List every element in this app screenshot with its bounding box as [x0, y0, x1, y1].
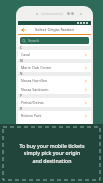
- staticText: Nossa Sanktarin: [21, 87, 84, 92]
- staticText: Roboni Park: [21, 113, 84, 118]
- staticText: P: [20, 94, 22, 98]
- staticText: Casal: [21, 52, 84, 57]
- button[interactable]: Back: [20, 27, 26, 33]
- button[interactable]: Search: [22, 37, 87, 44]
- button[interactable]: Marie Club Center: [18, 63, 91, 72]
- button[interactable]: Back: [18, 25, 91, 34]
- button[interactable]: Nossa Sanktarin: [18, 85, 91, 94]
- staticText: Nossa Harrillon: [21, 78, 84, 83]
- staticText: To buy your mobile tickets simply pick y…: [19, 142, 85, 165]
- staticText: M: [20, 59, 23, 63]
- staticText: Select Origin Station: [35, 27, 75, 32]
- button[interactable]: Roboni Park: [18, 111, 91, 120]
- button[interactable]: Nossa Harrillon: [18, 76, 91, 85]
- staticText: Pinhal/Oeiras: [21, 100, 84, 105]
- staticText: Search: [28, 38, 40, 43]
- button[interactable]: Pinhal/Oeiras: [18, 98, 91, 107]
- button[interactable]: Casal: [18, 50, 91, 59]
- staticText: Marie Club Center: [21, 65, 84, 70]
- staticText: C: [20, 46, 22, 50]
- staticText: R: [20, 107, 22, 111]
- staticText: N: [20, 72, 23, 76]
